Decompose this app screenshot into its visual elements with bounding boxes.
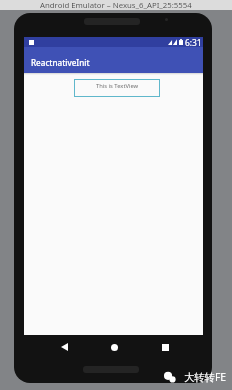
button[interactable]: Recents: [153, 335, 177, 359]
staticText: 6:31: [185, 37, 202, 47]
button[interactable]: ReactnativeInit: [24, 47, 203, 73]
staticText: ReactnativeInit: [31, 57, 90, 68]
staticText: This is TextView: [96, 82, 139, 90]
staticText: 大转转FE: [184, 370, 226, 384]
button[interactable]: Home: [102, 335, 126, 359]
staticText: Android Emulator – Nexus_6_API_25:5554: [40, 0, 192, 10]
button[interactable]: Back: [52, 335, 76, 359]
button[interactable]: This is TextView: [74, 79, 160, 97]
